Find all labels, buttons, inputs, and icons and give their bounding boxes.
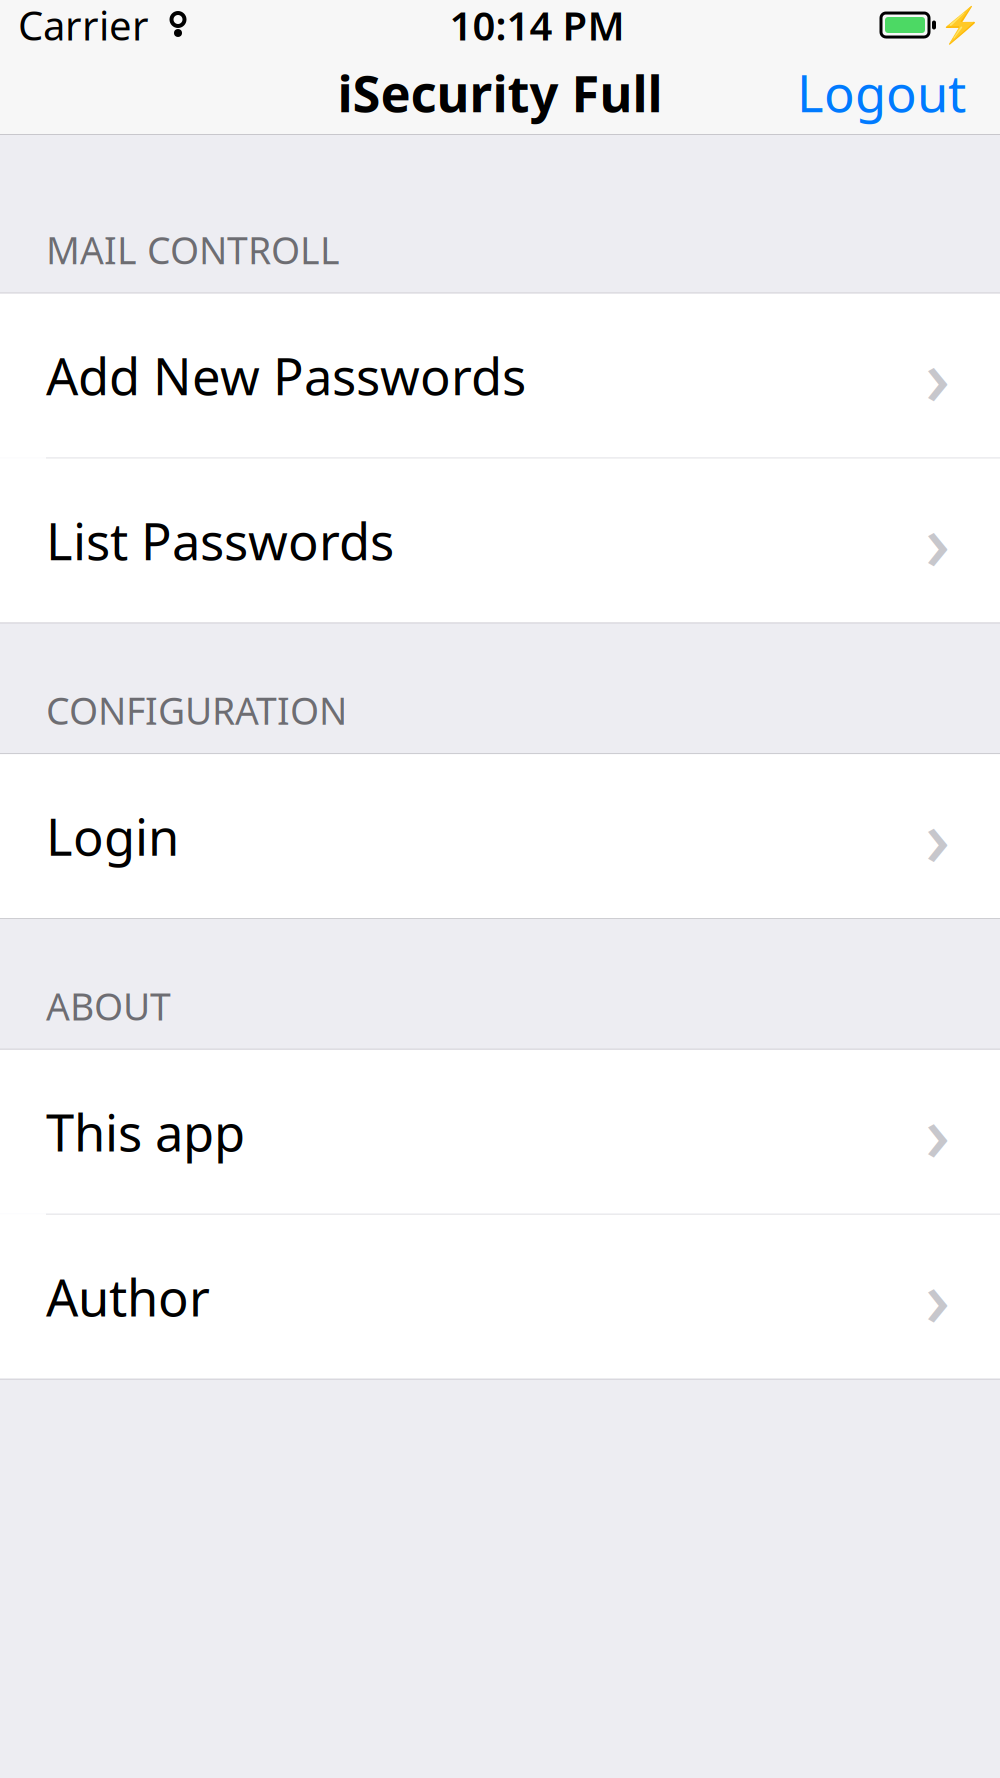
staticText: MAIL CONTROLL [46, 225, 340, 275]
staticText: Logout [797, 59, 966, 126]
staticText: › [925, 1080, 950, 1183]
staticText: This app [46, 1098, 245, 1165]
staticText: Login [46, 802, 179, 870]
staticText: Carrier [18, 0, 149, 51]
staticText: › [925, 489, 950, 592]
staticText: Add New Passwords [46, 342, 526, 409]
staticText: ⚡ [939, 5, 982, 45]
button[interactable]: Add New Passwords [0, 294, 1000, 458]
staticText: › [925, 1245, 950, 1348]
button[interactable]: Logout [779, 47, 984, 138]
staticText: 10:14 PM [449, 0, 624, 51]
staticText: Author [46, 1263, 210, 1330]
staticText: › [925, 785, 950, 887]
button[interactable]: List Passwords [0, 459, 1000, 623]
staticText: iSecurity Full [337, 59, 662, 126]
button[interactable]: This app [0, 1050, 1000, 1214]
button[interactable]: Author [0, 1215, 1000, 1379]
staticText: CONFIGURATION [46, 686, 347, 735]
staticText: › [925, 324, 950, 427]
staticText: List Passwords [46, 507, 394, 574]
staticText: ABOUT [46, 981, 171, 1031]
button[interactable]: Login [0, 754, 1000, 918]
